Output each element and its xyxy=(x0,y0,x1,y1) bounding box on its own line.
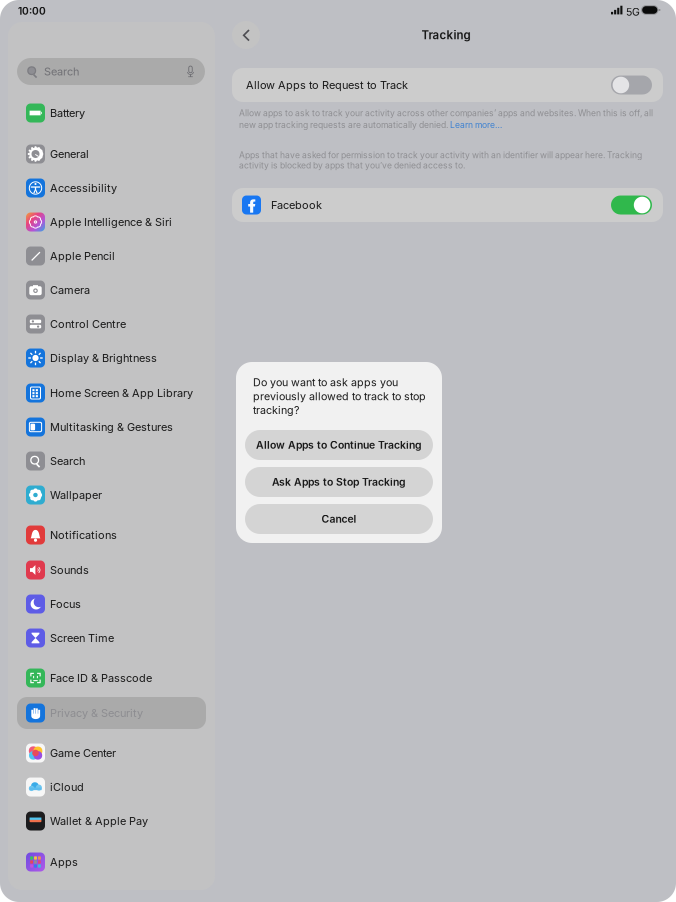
staticText: Home Screen & App Library xyxy=(50,386,193,400)
staticText: Apps that have asked for permission to t… xyxy=(239,150,642,171)
button[interactable]: Search xyxy=(17,445,206,477)
button[interactable]: Learn more… xyxy=(450,120,502,130)
button[interactable]: Wallet & Apple Pay xyxy=(17,805,206,837)
staticText: Multitasking & Gestures xyxy=(50,420,173,434)
staticText: Accessibility xyxy=(50,181,117,195)
staticText: Search xyxy=(44,65,79,78)
staticText: Apple Pencil xyxy=(50,249,115,263)
staticText: Cancel xyxy=(321,513,356,525)
button[interactable]: Multitasking & Gestures xyxy=(17,411,206,443)
staticText: Control Centre xyxy=(50,317,126,331)
staticText: Privacy & Security xyxy=(50,706,143,720)
button[interactable]: Display & Brightness xyxy=(17,342,206,374)
button[interactable]: Apple Intelligence & Siri xyxy=(17,206,206,238)
button[interactable]: General xyxy=(17,138,206,170)
button[interactable]: Facebook xyxy=(232,188,663,222)
button[interactable]: Cancel xyxy=(245,504,433,534)
button[interactable]: Wallpaper xyxy=(17,479,206,511)
staticText: 5G xyxy=(626,6,640,18)
staticText: iCloud xyxy=(50,780,84,794)
staticText: Do you want to ask apps you previously a… xyxy=(253,376,426,416)
staticText: Learn more… xyxy=(450,120,502,130)
button[interactable]: Face ID & Passcode xyxy=(17,662,206,694)
staticText: Focus xyxy=(50,597,81,611)
staticText: Facebook xyxy=(271,198,322,212)
button[interactable]: Apps xyxy=(17,846,206,878)
staticText: General xyxy=(50,147,89,161)
staticText: Game Center xyxy=(50,746,116,760)
button[interactable]: Focus xyxy=(17,588,206,620)
button[interactable]: Game Center xyxy=(17,737,206,769)
button[interactable]: Camera xyxy=(17,274,206,306)
button[interactable]: Sounds xyxy=(17,554,206,586)
button[interactable]: Allow Apps to Request to Track xyxy=(232,68,663,102)
button[interactable]: Battery xyxy=(17,97,206,129)
staticText: 10:00 xyxy=(18,5,46,17)
staticText: Apps xyxy=(50,855,78,869)
staticText: Apple Intelligence & Siri xyxy=(50,215,172,229)
staticText: Wallpaper xyxy=(50,488,102,502)
button[interactable]: Privacy & Security xyxy=(17,697,206,729)
button[interactable]: Ask Apps to Stop Tracking xyxy=(245,467,433,497)
button[interactable]: Notifications xyxy=(17,519,206,551)
button[interactable]: Apple Pencil xyxy=(17,240,206,272)
button[interactable]: Screen Time xyxy=(17,622,206,654)
button[interactable]: Home Screen & App Library xyxy=(17,377,206,409)
button[interactable]: Allow Apps to Continue Tracking xyxy=(245,430,433,460)
staticText: Camera xyxy=(50,283,90,297)
staticText: Ask Apps to Stop Tracking xyxy=(272,476,406,488)
button[interactable]: Back xyxy=(232,21,260,49)
button[interactable]: iCloud xyxy=(17,771,206,803)
staticText: Battery xyxy=(50,106,85,120)
staticText: Sounds xyxy=(50,563,89,577)
staticText: Face ID & Passcode xyxy=(50,671,152,685)
staticText: Allow Apps to Continue Tracking xyxy=(256,439,422,451)
staticText: Allow apps to ask to track your activity… xyxy=(239,108,653,118)
staticText: Tracking xyxy=(421,28,470,42)
staticText: Wallet & Apple Pay xyxy=(50,814,148,828)
button[interactable]: Accessibility xyxy=(17,172,206,204)
staticText: new app tracking requests are automatica… xyxy=(239,120,450,130)
staticText: Screen Time xyxy=(50,631,114,645)
staticText: Search xyxy=(50,454,85,468)
staticText: Allow Apps to Request to Track xyxy=(246,78,408,92)
button[interactable]: Control Centre xyxy=(17,308,206,340)
staticText: Notifications xyxy=(50,528,117,542)
staticText: Display & Brightness xyxy=(50,351,157,365)
